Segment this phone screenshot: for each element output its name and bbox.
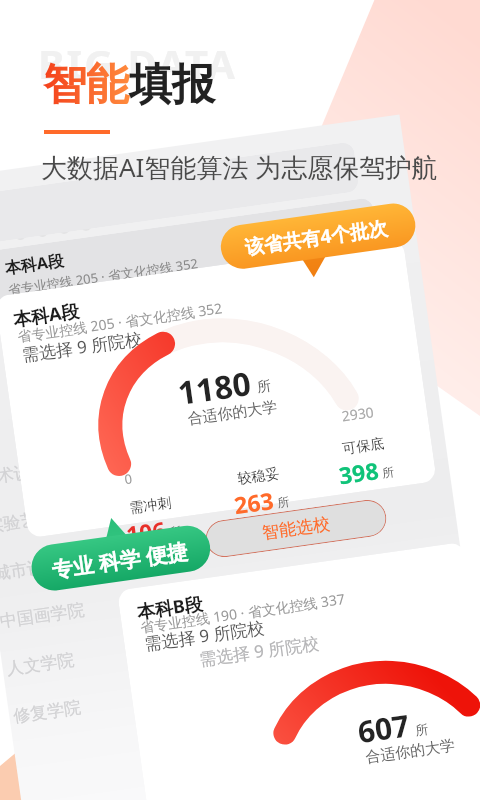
staticText: 需选择 9 所院校: [21, 327, 144, 366]
staticText: 省专业控线 205 · 省文化控线 352: [16, 298, 224, 346]
staticText: 2930: [340, 402, 376, 425]
staticText: 607: [355, 704, 412, 752]
staticText: 省专业控线 205 · 省文化控线 352: [7, 254, 199, 299]
staticText: 本科A段: [3, 249, 66, 279]
button[interactable]: 专业 科学 便捷: [26, 504, 224, 599]
staticText: BIG DATA: [38, 36, 237, 90]
staticText: 智能: [43, 58, 129, 112]
staticText: 美术设计: [0, 459, 49, 489]
staticText: 本科B段: [135, 591, 204, 625]
staticText: 填报: [129, 58, 215, 112]
staticText: 中国画学院: [0, 599, 86, 632]
staticText: 合适你的大学: [364, 736, 456, 767]
staticText: 本科A段: [11, 298, 81, 332]
staticText: 所: [256, 377, 272, 397]
staticText: 263: [232, 484, 276, 520]
staticText: 所: [168, 523, 182, 540]
staticText: 需选择 9 所院校: [198, 631, 321, 671]
staticText: 智能选校: [261, 513, 331, 544]
staticText: 实验艺术学院: [0, 502, 89, 537]
staticText: 省专业控线 190 · 省文化控线 337: [139, 589, 346, 636]
staticText: 城市设计学院: [0, 549, 96, 584]
staticText: 所: [381, 464, 395, 480]
staticText: 398: [337, 454, 381, 490]
staticText: 较稳妥: [236, 465, 280, 489]
staticText: 大数据AI智能算法 为志愿保驾护航: [41, 149, 438, 185]
staticText: 可保底: [341, 435, 385, 459]
staticText: 人文学院: [5, 649, 76, 680]
staticText: 1180: [175, 361, 254, 415]
staticText: 需选择 9 所院校: [143, 615, 266, 655]
staticText: 所: [276, 494, 290, 510]
staticText: 修复学院: [12, 697, 82, 727]
staticText: 需冲刺: [128, 494, 172, 518]
button[interactable]: 该省共有4个批次: [218, 200, 425, 289]
staticText: 该省共有4个批次: [243, 214, 389, 260]
staticText: 0: [123, 469, 134, 488]
staticText: 合适你的大学: [186, 398, 278, 429]
staticText: 所: [414, 721, 429, 738]
button[interactable]: 智能选校: [203, 497, 389, 559]
staticText: 106: [124, 513, 168, 550]
staticText: 专业 科学 便捷: [50, 537, 189, 585]
